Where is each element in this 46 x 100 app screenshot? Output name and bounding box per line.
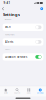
staticText: Alerts: [5, 40, 13, 44]
staticText: Location Services: [5, 55, 27, 59]
staticText: 9:41: [3, 1, 10, 5]
staticText: Apps: [27, 92, 31, 94]
staticText: Home: [4, 92, 8, 94]
staticText: PRIVACY: [5, 48, 11, 50]
button[interactable]: Wi-Fi: [3, 24, 43, 31]
button[interactable]: Apps: [23, 86, 34, 96]
button[interactable]: Search: [11, 86, 23, 96]
button[interactable]: Alerts: [3, 38, 43, 46]
staticText: Wi-Fi: [5, 25, 11, 29]
staticText: Search: [14, 92, 20, 94]
button[interactable]: Account: [39, 6, 45, 11]
staticText: Settings: [3, 12, 20, 17]
staticText: Settings: [37, 92, 44, 94]
button[interactable]: Home: [0, 86, 11, 96]
button[interactable]: Location Services: [3, 53, 43, 61]
staticText: GENERAL: [5, 19, 12, 20]
button[interactable]: Settings: [34, 86, 46, 96]
button[interactable]: Back: [1, 6, 6, 11]
staticText: NOTIFICATIONS: [5, 34, 15, 36]
